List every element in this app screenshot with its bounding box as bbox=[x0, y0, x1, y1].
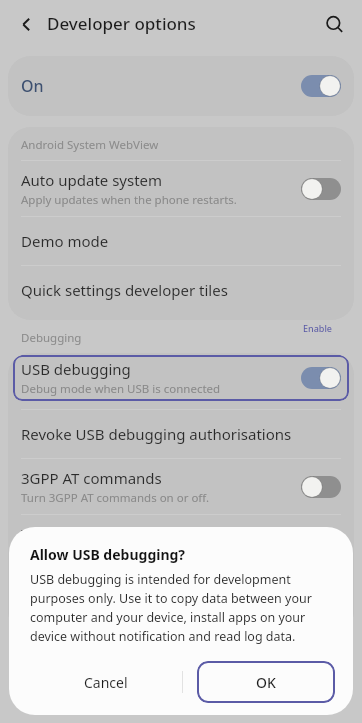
staticText: Debugging bbox=[21, 330, 82, 346]
staticText: Wireless debugging bbox=[21, 524, 161, 544]
button[interactable]: Toggle off bbox=[301, 476, 341, 498]
staticText: USB debugging is intended for developmen… bbox=[30, 571, 333, 645]
button[interactable]: Demo mode bbox=[8, 217, 354, 265]
staticText: Enable bbox=[303, 322, 332, 334]
staticText: 3GPP AT commands bbox=[21, 468, 162, 488]
button[interactable]: Toggle off bbox=[301, 178, 341, 200]
button[interactable]: OK bbox=[197, 661, 335, 703]
staticText: Cancel bbox=[84, 673, 128, 692]
staticText: Auto update system bbox=[21, 170, 163, 190]
button[interactable]: Toggle on bbox=[301, 367, 341, 389]
button[interactable]: Auto update system bbox=[8, 161, 354, 216]
button[interactable]: USB debugging bbox=[13, 355, 349, 401]
button[interactable]: 3GPP AT commands bbox=[8, 459, 354, 514]
staticText: Revoke USB debugging authorisations bbox=[21, 424, 341, 444]
staticText: Quick settings developer tiles bbox=[21, 280, 341, 300]
button[interactable]: Cancel bbox=[30, 661, 182, 703]
button[interactable]: Quick settings developer tiles bbox=[8, 266, 354, 314]
staticText: On bbox=[21, 75, 301, 97]
button[interactable]: Search bbox=[316, 6, 352, 42]
staticText: Android System WebView bbox=[21, 137, 159, 153]
button[interactable]: On bbox=[8, 56, 354, 116]
staticText: Check apps installed via ADB/ADT for har… bbox=[21, 594, 293, 626]
staticText: Verify apps over USB bbox=[21, 572, 167, 592]
button[interactable]: Revoke USB debugging authorisations bbox=[8, 410, 354, 458]
button[interactable]: Wireless debugging bbox=[8, 515, 354, 570]
staticText: Demo mode bbox=[21, 231, 341, 251]
button[interactable]: Verify apps over USB bbox=[8, 571, 354, 626]
staticText: Turn 3GPP AT commands on or off. bbox=[21, 490, 210, 506]
staticText: Apply updates when the phone restarts. bbox=[21, 192, 237, 208]
staticText: Allow USB debugging? bbox=[30, 545, 186, 564]
staticText: Debug mode when Wi-Fi is connected bbox=[21, 546, 225, 562]
button[interactable]: Toggle on bbox=[301, 75, 341, 97]
button[interactable]: Back bbox=[9, 7, 43, 41]
button[interactable]: Toggle off bbox=[301, 588, 341, 610]
staticText: Debug mode when USB is connected bbox=[21, 381, 221, 397]
staticText: OK bbox=[256, 673, 276, 692]
staticText: USB debugging bbox=[21, 359, 131, 379]
staticText: Developer options bbox=[47, 12, 196, 35]
